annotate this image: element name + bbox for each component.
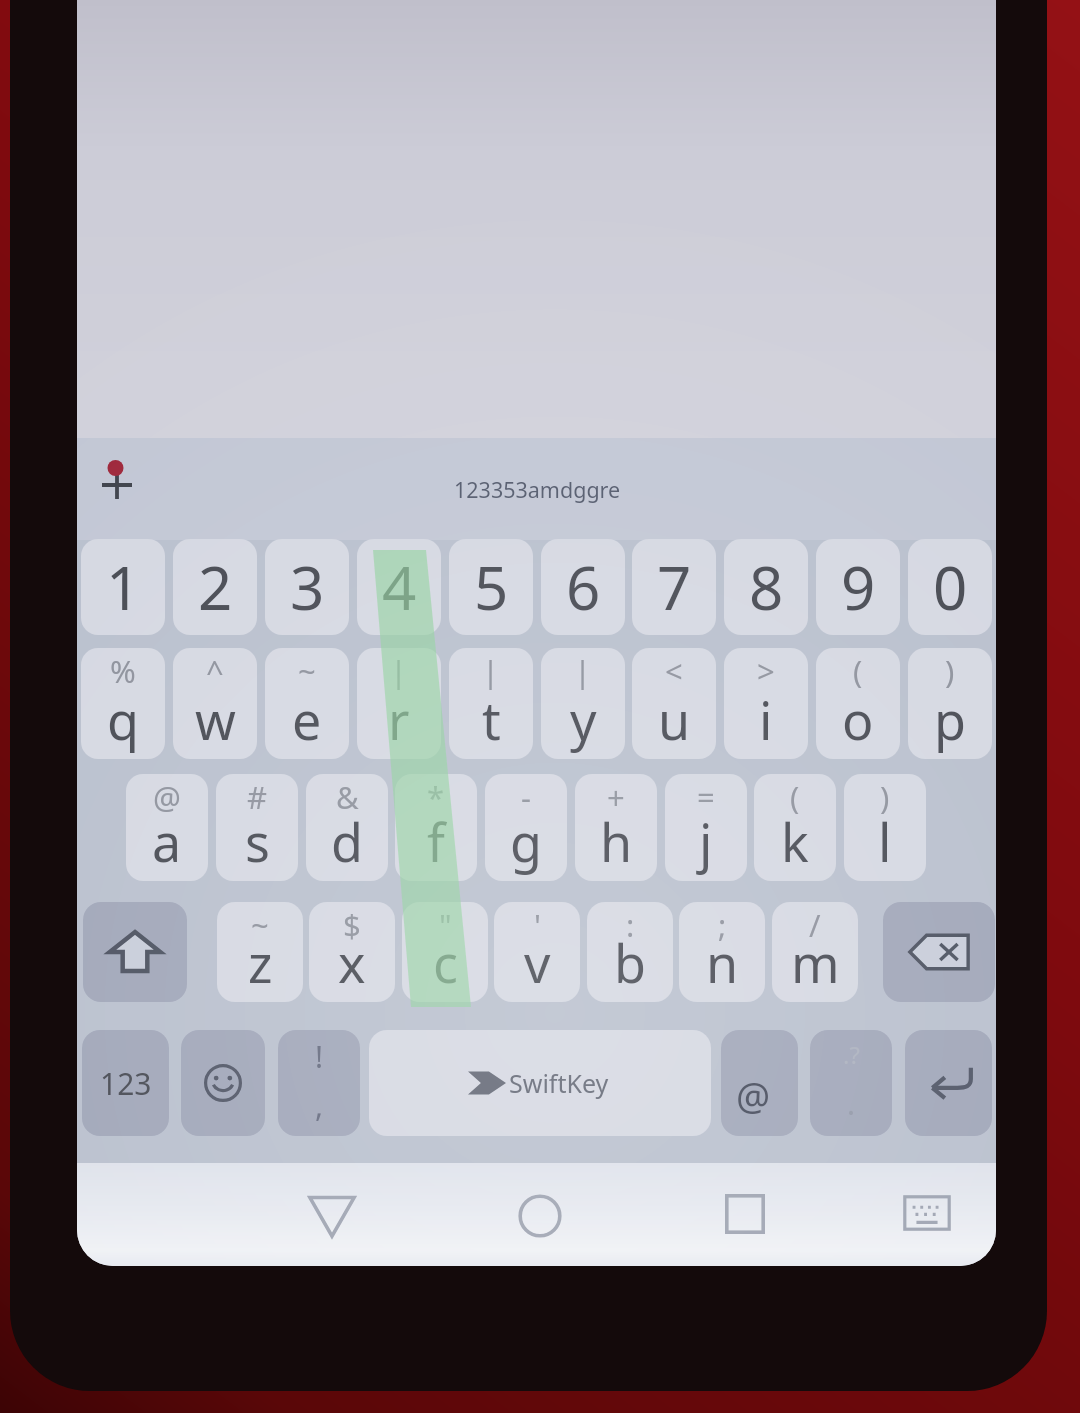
button[interactable]: % xyxy=(81,648,165,759)
staticText: 7 xyxy=(657,546,692,628)
button[interactable]: ( xyxy=(754,774,836,881)
staticText: z xyxy=(248,927,273,998)
button[interactable]: & xyxy=(306,774,388,881)
staticText: k xyxy=(781,806,809,877)
button[interactable]: < xyxy=(632,648,716,759)
staticText: / xyxy=(809,904,821,946)
button[interactable]: * xyxy=(395,774,477,881)
button[interactable]: Numbers xyxy=(82,1030,169,1136)
button[interactable]: 1 xyxy=(81,539,165,635)
staticText: | xyxy=(390,650,408,692)
staticText: 8 xyxy=(749,546,784,628)
staticText: < xyxy=(665,650,683,692)
staticText: v xyxy=(524,927,551,998)
button[interactable]: At sign xyxy=(721,1030,798,1136)
staticText: , xyxy=(315,1085,324,1126)
staticText: $ xyxy=(343,904,361,946)
staticText: a xyxy=(152,806,182,877)
staticText: h xyxy=(600,806,633,877)
staticText: 3 xyxy=(290,546,325,628)
button[interactable]: Add xyxy=(77,436,159,520)
staticText: n xyxy=(706,927,739,998)
staticText: w xyxy=(195,684,236,755)
staticText: ( xyxy=(790,776,800,818)
button[interactable]: | xyxy=(541,648,625,759)
staticText: j xyxy=(699,806,713,877)
staticText: 4 xyxy=(382,546,417,628)
staticText: | xyxy=(574,650,592,692)
button[interactable]: 9 xyxy=(816,539,900,635)
staticText: ' xyxy=(534,904,541,946)
staticText: 0 xyxy=(933,546,968,628)
button[interactable]: 4 xyxy=(357,539,441,635)
button[interactable]: ) xyxy=(908,648,992,759)
button[interactable]: 8 xyxy=(724,539,808,635)
button[interactable]: 2 xyxy=(173,539,257,635)
staticText: 123353amdggre xyxy=(454,475,621,504)
button[interactable]: + xyxy=(575,774,657,881)
button[interactable]: ~ xyxy=(265,648,349,759)
button[interactable]: 3 xyxy=(265,539,349,635)
button[interactable]: $ xyxy=(309,902,395,1002)
staticText: @ xyxy=(736,1069,771,1121)
button[interactable]: Shift xyxy=(83,902,187,1002)
staticText: ^ xyxy=(206,650,224,692)
staticText: g xyxy=(510,806,542,877)
staticText: ( xyxy=(853,650,863,692)
button[interactable]: Comma xyxy=(278,1030,360,1136)
button[interactable]: | xyxy=(449,648,533,759)
staticText: r xyxy=(388,684,410,755)
staticText: @ xyxy=(153,776,181,818)
button[interactable]: 0 xyxy=(908,539,992,635)
button[interactable]: Recents xyxy=(675,1163,815,1265)
staticText: 5 xyxy=(474,546,509,628)
button[interactable]: = xyxy=(665,774,747,881)
button[interactable]: Home xyxy=(470,1165,610,1266)
staticText: l xyxy=(878,806,892,877)
button[interactable]: ( xyxy=(816,648,900,759)
button[interactable]: # xyxy=(216,774,298,881)
staticText: p xyxy=(934,684,966,755)
button[interactable]: > xyxy=(724,648,808,759)
staticText: ~ xyxy=(298,650,316,692)
button[interactable]: Enter xyxy=(905,1030,992,1136)
button[interactable]: ) xyxy=(844,774,926,881)
staticText: # xyxy=(247,776,268,818)
staticText: ) xyxy=(880,776,890,818)
staticText: " xyxy=(439,904,452,946)
button[interactable]: Back xyxy=(262,1165,402,1266)
staticText: 123 xyxy=(100,1063,152,1104)
staticText: u xyxy=(658,684,691,755)
button[interactable]: / xyxy=(772,902,858,1002)
staticText: d xyxy=(331,806,363,877)
staticText: t xyxy=(482,684,501,755)
button[interactable]: Emoji xyxy=(181,1030,265,1136)
staticText: & xyxy=(336,776,359,818)
button[interactable]: ; xyxy=(679,902,765,1002)
staticText: m xyxy=(791,927,840,998)
button[interactable]: | xyxy=(357,648,441,759)
staticText: ! xyxy=(315,1036,324,1077)
button[interactable]: ^ xyxy=(173,648,257,759)
button[interactable]: ' xyxy=(494,902,580,1002)
staticText: e xyxy=(292,684,322,755)
button[interactable]: 6 xyxy=(541,539,625,635)
button[interactable]: ~ xyxy=(217,902,303,1002)
button[interactable]: : xyxy=(587,902,673,1002)
staticText: q xyxy=(107,684,139,755)
button[interactable]: @ xyxy=(126,774,208,881)
button[interactable]: Backspace xyxy=(883,902,995,1002)
button[interactable]: Keyboard xyxy=(857,1162,996,1264)
button[interactable]: - xyxy=(485,774,567,881)
staticText: x xyxy=(338,927,366,998)
button[interactable]: Space xyxy=(369,1030,711,1136)
staticText: : xyxy=(626,904,635,946)
staticText: > xyxy=(757,650,775,692)
staticText: ; xyxy=(718,904,727,946)
button[interactable]: 7 xyxy=(632,539,716,635)
button[interactable]: Period xyxy=(810,1030,892,1136)
staticText: 2 xyxy=(198,546,233,628)
button[interactable]: " xyxy=(402,902,488,1002)
button[interactable]: 5 xyxy=(449,539,533,635)
